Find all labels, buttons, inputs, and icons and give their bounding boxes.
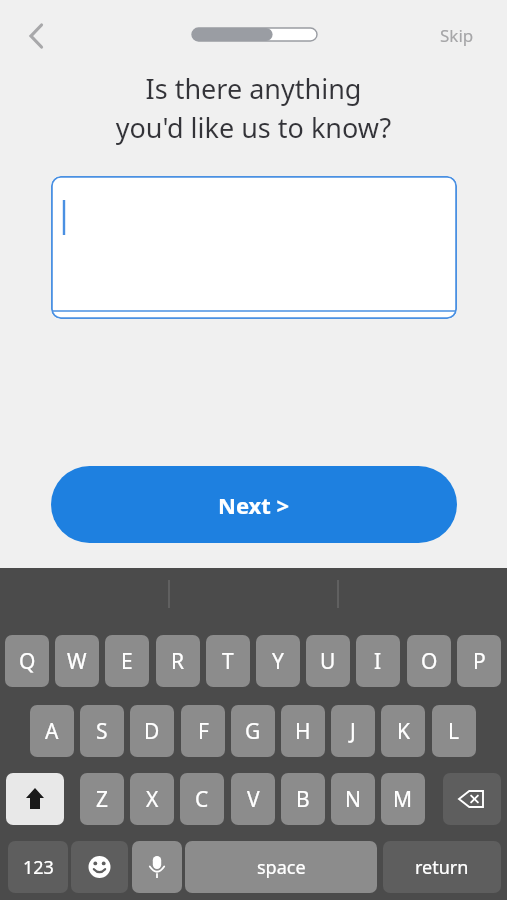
button[interactable]: Y (256, 635, 300, 687)
staticText: Skip (440, 24, 474, 47)
button[interactable]: Emoji (71, 841, 128, 893)
button[interactable]: T (206, 635, 250, 687)
staticText: D (144, 717, 160, 746)
staticText: F (198, 717, 209, 746)
button[interactable]: Z (80, 773, 124, 825)
button[interactable]: I (356, 635, 400, 687)
staticText: O (421, 647, 438, 676)
button[interactable]: R (156, 635, 200, 687)
button[interactable]: D (130, 705, 174, 757)
staticText: I (374, 647, 382, 676)
staticText: space (257, 855, 306, 880)
staticText: Z (96, 785, 109, 814)
button[interactable]: Voice input (132, 841, 182, 893)
button[interactable]: N (331, 773, 375, 825)
button[interactable]: F (181, 705, 225, 757)
staticText: E (121, 647, 133, 676)
button[interactable]: E (105, 635, 149, 687)
staticText: M (393, 785, 413, 814)
button[interactable]: Backspace (443, 773, 501, 825)
button[interactable]: U (306, 635, 350, 687)
button[interactable]: C (180, 773, 224, 825)
button[interactable]: Skip (424, 14, 490, 56)
staticText: R (171, 647, 185, 676)
button[interactable]: return (383, 841, 501, 893)
staticText: U (320, 647, 336, 676)
button[interactable]: 123 (8, 841, 68, 893)
staticText: V (247, 785, 260, 814)
staticText: L (448, 717, 460, 746)
button[interactable]: Next > (51, 466, 457, 543)
button[interactable] (51, 176, 457, 319)
staticText: 123 (23, 855, 54, 880)
staticText: A (45, 717, 59, 746)
button[interactable]: A (30, 705, 74, 757)
staticText: W (67, 647, 87, 676)
button[interactable]: X (130, 773, 174, 825)
button[interactable]: M (381, 773, 425, 825)
button[interactable]: B (281, 773, 325, 825)
staticText: K (397, 717, 410, 746)
button[interactable]: P (457, 635, 501, 687)
button[interactable]: Shift (6, 773, 64, 825)
staticText: Q (19, 647, 36, 676)
button[interactable]: W (55, 635, 99, 687)
button[interactable]: K (381, 705, 425, 757)
button[interactable]: H (281, 705, 325, 757)
staticText: return (415, 855, 469, 880)
button[interactable]: S (80, 705, 124, 757)
staticText: B (296, 785, 310, 814)
staticText: H (295, 717, 311, 746)
staticText: Is there anything you'd like us to know? (24, 70, 483, 146)
button[interactable]: space (185, 841, 377, 893)
staticText: N (345, 785, 361, 814)
button[interactable]: L (432, 705, 476, 757)
staticText: X (146, 785, 159, 814)
staticText: J (350, 717, 356, 746)
staticText: Next > (218, 490, 290, 520)
staticText: C (195, 785, 209, 814)
button[interactable]: G (231, 705, 275, 757)
staticText: T (222, 647, 234, 676)
staticText: Y (272, 647, 284, 676)
staticText: S (96, 717, 108, 746)
button[interactable]: Q (5, 635, 49, 687)
button[interactable]: V (231, 773, 275, 825)
staticText: P (473, 647, 486, 676)
button[interactable]: J (331, 705, 375, 757)
button[interactable]: Back (8, 8, 64, 64)
staticText: G (245, 717, 261, 746)
button[interactable]: O (407, 635, 451, 687)
